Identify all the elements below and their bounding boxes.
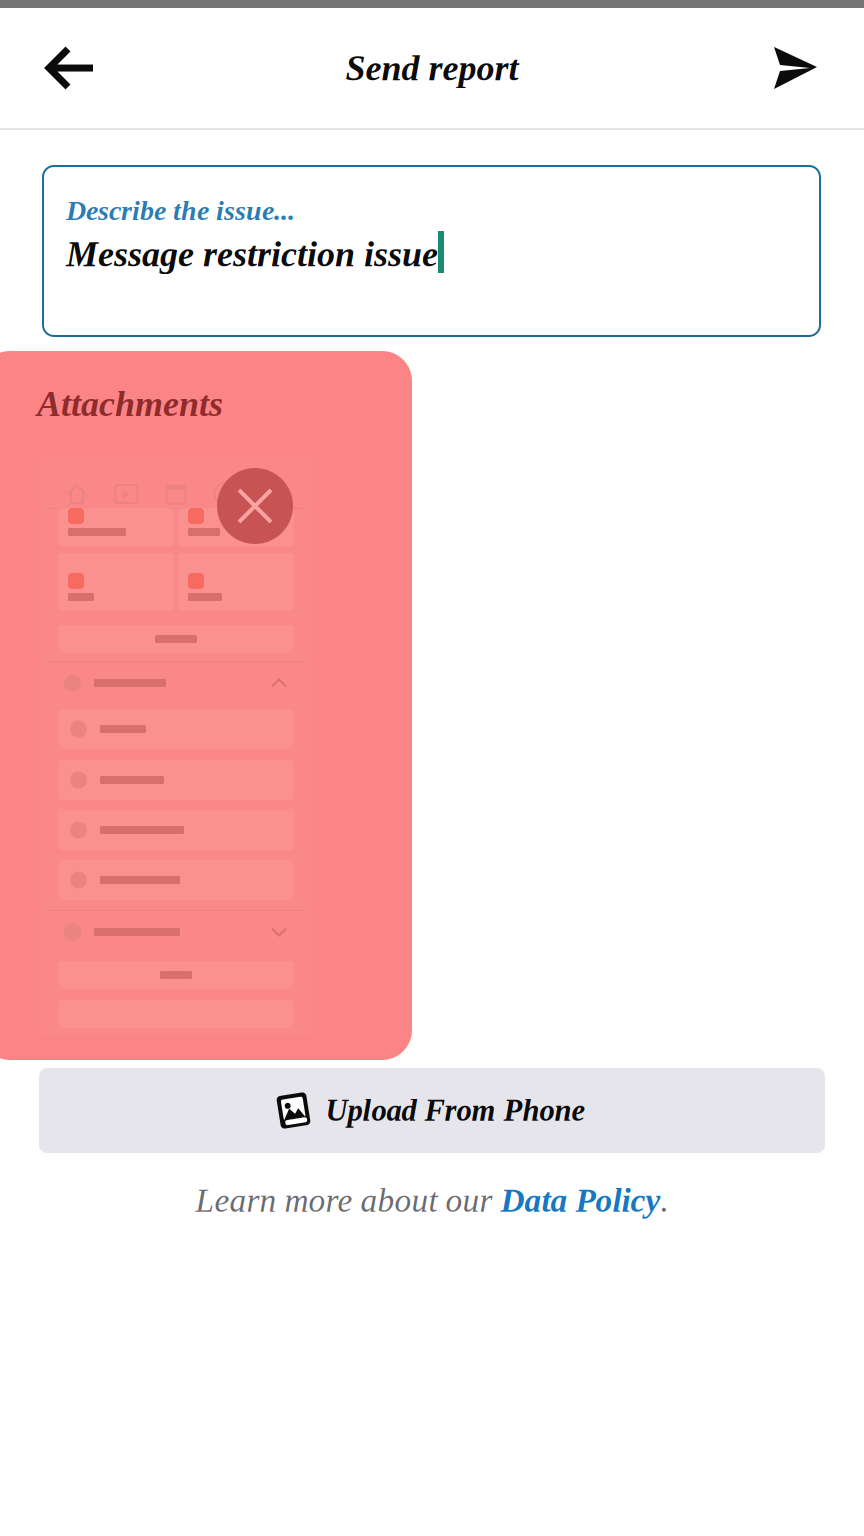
staticText: Describe the issue...	[66, 195, 295, 226]
staticText: Attachments	[37, 384, 223, 424]
staticText: Data Policy	[500, 1182, 660, 1219]
button[interactable]: Remove attachment	[217, 468, 293, 544]
staticText: Learn more about our	[195, 1182, 500, 1219]
button[interactable]: Send	[740, 8, 850, 128]
button[interactable]: Back	[14, 8, 124, 128]
staticText: Message restriction issue	[66, 234, 438, 274]
button[interactable]: Upload From Phone	[39, 1068, 825, 1153]
staticText: Send report	[345, 48, 518, 88]
staticText: .	[660, 1182, 668, 1219]
staticText: Upload From Phone	[325, 1093, 585, 1127]
